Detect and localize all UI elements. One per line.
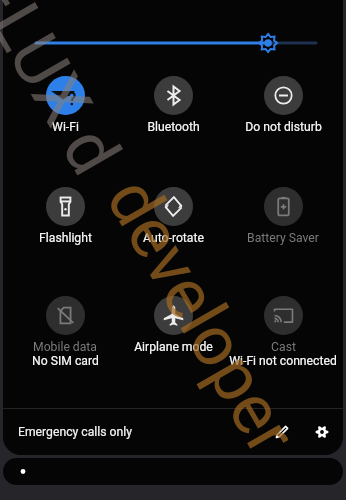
button[interactable]: Edit tiles bbox=[267, 417, 297, 447]
staticText: Airplane mode bbox=[134, 340, 213, 354]
button[interactable]: Settings bbox=[307, 417, 337, 447]
staticText: Auto-rotate bbox=[143, 231, 204, 245]
button[interactable]: Bluetooth bbox=[109, 76, 237, 134]
button[interactable]: Auto-rotate bbox=[109, 187, 237, 245]
staticText: Wi-Fi bbox=[52, 120, 79, 134]
button[interactable]: Mobile data bbox=[3, 296, 129, 368]
button[interactable]: Cast bbox=[219, 296, 343, 368]
staticText: Battery Saver bbox=[247, 231, 319, 245]
staticText: Bluetooth bbox=[147, 120, 200, 134]
button[interactable]: Do not disturb bbox=[219, 76, 343, 134]
staticText: Mobile data bbox=[33, 340, 97, 354]
staticText: Emergency calls only bbox=[18, 425, 132, 439]
button[interactable]: Battery Saver bbox=[219, 187, 343, 245]
button[interactable]: Wi-Fi bbox=[3, 76, 129, 134]
staticText: Wi-Fi not connected bbox=[229, 354, 337, 368]
staticText: Flashlight bbox=[39, 231, 92, 245]
button[interactable] bbox=[31, 33, 321, 53]
staticText: Do not disturb bbox=[245, 120, 322, 134]
staticText: No SIM card bbox=[32, 354, 99, 368]
button[interactable]: Airplane mode bbox=[109, 296, 237, 354]
button[interactable]: Flashlight bbox=[3, 187, 129, 245]
staticText: Cast bbox=[271, 340, 296, 354]
button[interactable]: Emergency calls only bbox=[13, 409, 137, 455]
